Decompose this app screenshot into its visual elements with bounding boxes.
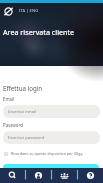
button[interactable]: Inserisci email [3, 105, 100, 118]
staticText: Effettua login [3, 84, 43, 92]
button[interactable]: Inserisci password [3, 131, 100, 144]
staticText: Email [3, 96, 15, 102]
button[interactable]: Help [77, 168, 103, 183]
staticText: Inserisci email [8, 109, 37, 115]
staticText: Area riservata cliente [3, 27, 75, 37]
button[interactable]: Ricordami su questo dispositivo per 30gg [4, 151, 83, 156]
button[interactable]: Community [51, 168, 77, 183]
button[interactable]: Account [25, 168, 51, 183]
button[interactable]: Logo [4, 7, 13, 16]
staticText: Password [3, 122, 23, 128]
staticText: Inserisci password [8, 135, 45, 141]
staticText: Ricordami su questo dispositivo per 30gg [11, 151, 83, 156]
button[interactable]: ITA | ENG [19, 8, 39, 14]
button[interactable]: Search [0, 168, 25, 183]
